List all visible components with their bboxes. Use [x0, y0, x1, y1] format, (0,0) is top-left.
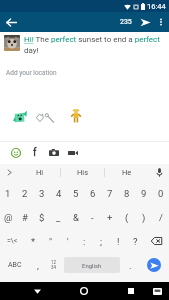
button[interactable]: 0: [152, 181, 169, 205]
staticText: _: [56, 212, 61, 223]
button[interactable]: His: [61, 164, 105, 181]
staticText: ': [67, 236, 69, 247]
button[interactable]: 1: [0, 181, 16, 205]
staticText: 235: [120, 18, 132, 26]
button[interactable]: $: [33, 205, 50, 229]
staticText: 8: [124, 188, 130, 199]
button[interactable]: ): [135, 205, 152, 229]
staticText: (: [125, 212, 129, 223]
staticText: 4: [56, 188, 62, 199]
button[interactable]: 8: [118, 181, 135, 205]
button[interactable]: Voice input: [149, 164, 169, 181]
button[interactable]: ": [42, 229, 59, 253]
staticText: His: [77, 168, 89, 177]
staticText: 5: [73, 188, 79, 199]
staticText: 6: [90, 188, 96, 199]
button[interactable]: Hi: [18, 164, 61, 181]
staticText: 9: [141, 188, 147, 199]
button[interactable]: #: [16, 205, 33, 229]
button[interactable]: _: [50, 205, 67, 229]
button[interactable]: @: [0, 205, 16, 229]
button[interactable]: Facebook: [28, 142, 41, 164]
staticText: 34: [51, 265, 57, 270]
button[interactable]: Video: [66, 142, 79, 164]
button[interactable]: Send: [138, 253, 169, 277]
staticText: Add your location: [6, 69, 57, 77]
button[interactable]: ;: [93, 229, 110, 253]
button[interactable]: ABC: [0, 253, 30, 277]
staticText: ;: [100, 236, 103, 247]
staticText: f: [33, 147, 37, 159]
staticText: He: [122, 168, 132, 177]
staticText: +: [107, 212, 113, 223]
button[interactable]: 9: [135, 181, 152, 205]
button[interactable]: =\<: [0, 229, 25, 253]
button[interactable]: /: [152, 205, 169, 229]
button[interactable]: !: [110, 229, 127, 253]
staticText: @: [4, 212, 13, 223]
staticText: 2: [22, 188, 28, 199]
staticText: -: [91, 212, 94, 223]
button[interactable]: English: [64, 257, 120, 273]
staticText: Hi: [36, 168, 44, 177]
button[interactable]: (: [118, 205, 135, 229]
button[interactable]: 7: [101, 181, 118, 205]
staticText: ": [49, 236, 53, 247]
staticText: 7: [107, 188, 113, 199]
staticText: Hi! The perfect sunset to end a perfect …: [24, 35, 164, 55]
button[interactable]: 6: [84, 181, 101, 205]
button[interactable]: Back: [3, 14, 20, 31]
button[interactable]: -: [84, 205, 101, 229]
button[interactable]: *: [25, 229, 42, 253]
staticText: &: [73, 212, 79, 223]
button[interactable]: Home: [75, 282, 93, 300]
staticText: ): [142, 212, 146, 223]
button[interactable]: Emoji: [9, 142, 22, 164]
button[interactable]: 4: [50, 181, 67, 205]
button[interactable]: Backspace: [144, 229, 169, 253]
button[interactable]: +: [101, 205, 118, 229]
staticText: 12: [51, 260, 57, 265]
button[interactable]: Switch keyboard: [148, 282, 166, 300]
button[interactable]: :: [76, 229, 93, 253]
button[interactable]: Add your location: [6, 67, 169, 79]
staticText: English: [82, 262, 102, 269]
staticText: 16:44: [147, 2, 166, 11]
staticText: $: [39, 212, 45, 223]
button[interactable]: More options: [153, 14, 169, 30]
button[interactable]: ,: [30, 253, 46, 277]
button[interactable]: ': [59, 229, 76, 253]
staticText: ABC: [8, 261, 22, 269]
button[interactable]: 3: [33, 181, 50, 205]
staticText: 3: [39, 188, 45, 199]
staticText: 1: [5, 188, 11, 199]
button[interactable]: Recents: [122, 282, 140, 300]
staticText: =\<: [7, 237, 18, 245]
staticText: ?: [133, 236, 138, 247]
button[interactable]: Send message: [137, 14, 153, 30]
button[interactable]: Camera: [47, 142, 60, 164]
staticText: *: [31, 236, 36, 247]
button[interactable]: 5: [67, 181, 84, 205]
button[interactable]: Hide keyboard: [28, 282, 46, 300]
button[interactable]: More suggestions: [0, 164, 18, 181]
staticText: /: [159, 212, 163, 223]
button[interactable]: &: [67, 205, 84, 229]
button[interactable]: 2: [16, 181, 33, 205]
button[interactable]: .: [122, 253, 138, 277]
staticText: #: [22, 212, 28, 223]
button[interactable]: He: [105, 164, 149, 181]
staticText: !: [117, 236, 120, 247]
staticText: 0: [158, 188, 164, 199]
staticText: :: [83, 236, 86, 247]
button[interactable]: Numbers: [46, 253, 62, 277]
staticText: ,: [37, 260, 39, 271]
staticText: .: [129, 260, 132, 271]
button[interactable]: ?: [127, 229, 144, 253]
